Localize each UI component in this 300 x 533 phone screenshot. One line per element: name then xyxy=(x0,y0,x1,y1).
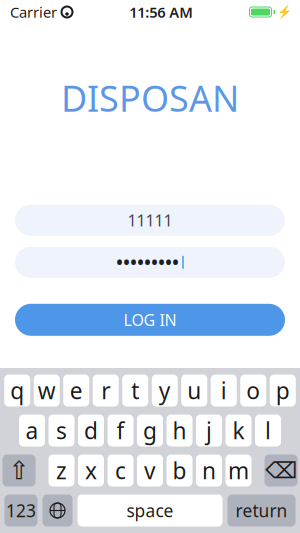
button[interactable]: s xyxy=(48,414,74,446)
button[interactable]: t xyxy=(122,374,148,406)
button[interactable]: u xyxy=(181,374,207,406)
button[interactable]: v xyxy=(137,454,163,486)
button[interactable]: z xyxy=(48,454,74,486)
staticText: ⚡ xyxy=(277,5,292,19)
button[interactable]: l xyxy=(255,414,281,446)
staticText: f xyxy=(116,415,124,445)
staticText: c xyxy=(115,455,126,485)
staticText: z xyxy=(56,455,67,485)
button[interactable]: n xyxy=(196,454,222,486)
staticText: a xyxy=(25,415,38,445)
button[interactable]: j xyxy=(196,414,222,446)
staticText: t xyxy=(131,375,139,405)
button[interactable]: d xyxy=(78,414,104,446)
staticText: s xyxy=(56,415,67,445)
button[interactable]: o xyxy=(240,374,266,406)
staticText: j xyxy=(206,415,212,445)
staticText: 11:56 AM xyxy=(129,2,193,22)
staticText: return xyxy=(235,499,287,522)
button[interactable]: c xyxy=(107,454,133,486)
button[interactable]: q xyxy=(4,374,30,406)
button[interactable]: Delete xyxy=(264,454,297,486)
staticText: n xyxy=(202,455,216,485)
staticText: g xyxy=(143,415,157,445)
button[interactable]: 11111 xyxy=(15,205,285,236)
button[interactable]: f xyxy=(107,414,133,446)
staticText: u xyxy=(187,375,201,405)
staticText: v xyxy=(144,455,156,485)
staticText: ••••••••• xyxy=(116,251,179,274)
button[interactable]: return xyxy=(227,494,295,526)
staticText: d xyxy=(84,415,98,445)
staticText: q xyxy=(10,375,24,405)
staticText: x xyxy=(85,455,97,485)
staticText: o xyxy=(246,375,260,405)
button[interactable]: p xyxy=(270,374,296,406)
button[interactable]: LOG IN xyxy=(15,304,285,336)
button[interactable]: g xyxy=(137,414,163,446)
button[interactable]: Shift xyxy=(2,454,35,486)
staticText: l xyxy=(265,415,271,445)
staticText: m xyxy=(228,455,249,485)
button[interactable]: 123 xyxy=(4,494,37,526)
staticText: p xyxy=(276,375,290,405)
staticText: b xyxy=(172,455,186,485)
staticText: w xyxy=(38,375,56,405)
button[interactable]: h xyxy=(166,414,192,446)
button[interactable]: w xyxy=(34,374,60,406)
button[interactable]: a xyxy=(19,414,45,446)
button[interactable]: b xyxy=(166,454,192,486)
staticText: space xyxy=(126,499,173,522)
staticText: k xyxy=(232,415,244,445)
button[interactable]: e xyxy=(63,374,89,406)
staticText: r xyxy=(101,375,110,405)
button[interactable]: r xyxy=(93,374,119,406)
staticText: ⇧ xyxy=(8,456,29,485)
staticText: e xyxy=(70,375,83,405)
button[interactable]: space xyxy=(77,494,222,526)
button[interactable]: ••••••••• xyxy=(15,247,285,278)
staticText: i xyxy=(221,375,227,405)
button[interactable]: x xyxy=(78,454,104,486)
button[interactable]: m xyxy=(225,454,251,486)
button[interactable]: k xyxy=(225,414,251,446)
staticText: y xyxy=(159,375,171,405)
staticText: ⌫ xyxy=(265,458,297,483)
button[interactable]: y xyxy=(152,374,178,406)
button[interactable]: i xyxy=(211,374,237,406)
staticText: Carrier xyxy=(10,2,57,22)
staticText: 11111 xyxy=(127,210,172,231)
staticText: LOG IN xyxy=(123,309,176,330)
staticText: h xyxy=(172,415,186,445)
button[interactable]: Next keyboard xyxy=(42,494,72,526)
staticText: 123 xyxy=(6,499,36,522)
staticText: DISPOSAN xyxy=(61,74,239,122)
